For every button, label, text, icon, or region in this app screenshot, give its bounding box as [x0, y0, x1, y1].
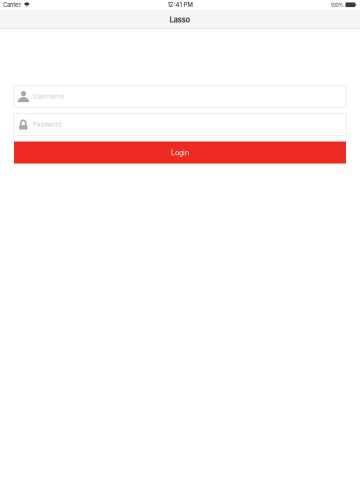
staticText: Password [33, 121, 62, 128]
button[interactable]: Password [14, 113, 346, 135]
button[interactable]: Login [14, 142, 346, 164]
staticText: 100% [330, 1, 343, 8]
staticText: 12:41 PM [167, 1, 192, 8]
staticText: Login [171, 148, 189, 157]
staticText: Username [33, 93, 65, 100]
staticText: Carrier [3, 1, 21, 8]
button[interactable]: Username [14, 85, 346, 107]
staticText: Lasso [169, 15, 190, 24]
